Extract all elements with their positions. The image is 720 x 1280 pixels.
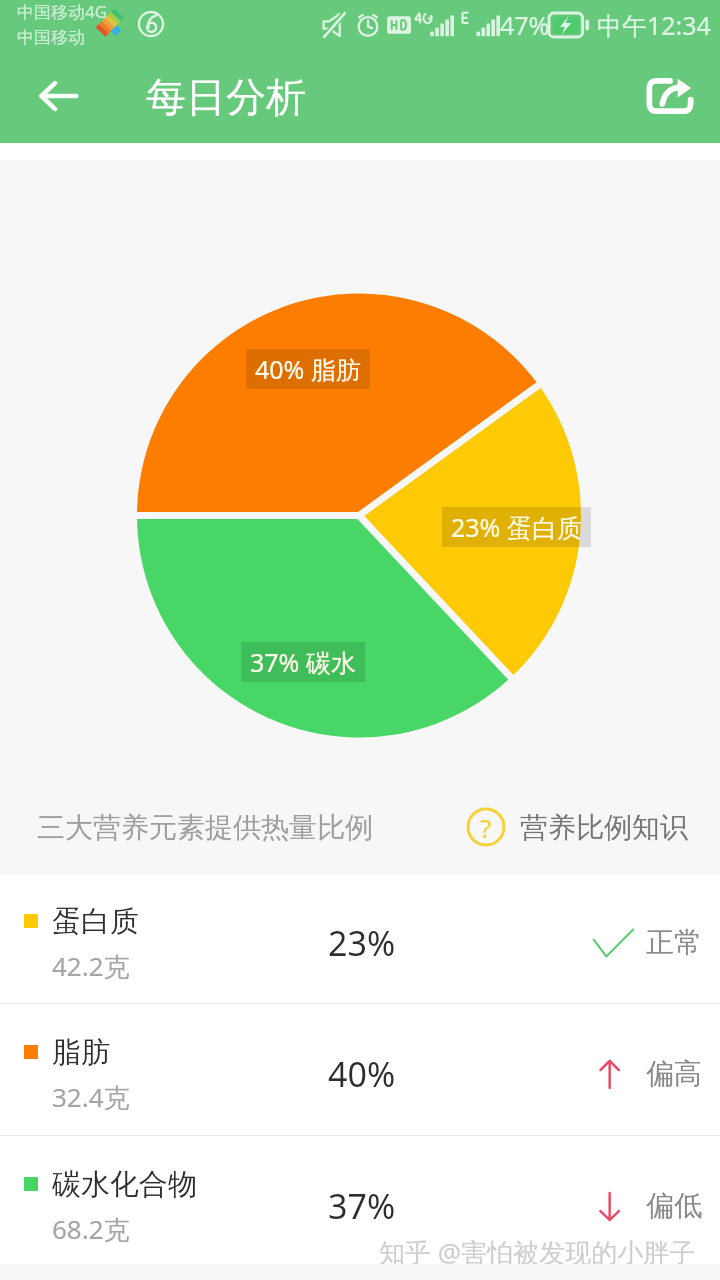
staticText: 42.2克: [52, 948, 130, 984]
staticText: 每日分析: [146, 72, 306, 122]
staticText: 营养比例知识: [520, 810, 688, 845]
button[interactable]: 蛋白质: [0, 874, 720, 1003]
button[interactable]: Back: [28, 66, 88, 126]
staticText: 40% 脂肪: [255, 352, 361, 386]
staticText: 47%: [500, 8, 550, 42]
staticText: 知乎 @害怕被发现的小胖子: [379, 1234, 696, 1270]
staticText: 中国移动4G: [17, 0, 108, 23]
button[interactable]: ?: [462, 803, 692, 851]
staticText: ?: [480, 810, 492, 845]
staticText: 脂肪: [52, 1034, 110, 1071]
staticText: 三大营养元素提供热量比例: [37, 810, 373, 845]
staticText: 40%: [328, 1051, 396, 1097]
staticText: 68.2克: [52, 1211, 130, 1247]
staticText: 蛋白质: [52, 903, 139, 940]
staticText: 中国移动: [17, 27, 85, 48]
button[interactable]: 脂肪: [0, 1004, 720, 1135]
staticText: 偏低: [646, 1188, 702, 1223]
staticText: 23% 蛋白质: [451, 510, 582, 544]
staticText: 中午12:34: [597, 8, 711, 42]
button[interactable]: 碳水化合物: [0, 1136, 720, 1267]
button[interactable]: Share: [640, 66, 700, 126]
staticText: 32.4克: [52, 1079, 130, 1115]
staticText: 碳水化合物: [52, 1166, 197, 1203]
staticText: 偏高: [646, 1056, 702, 1091]
staticText: 37% 碳水: [250, 645, 356, 679]
staticText: 正常: [646, 925, 702, 960]
staticText: 37%: [328, 1183, 396, 1229]
staticText: 23%: [328, 920, 396, 966]
